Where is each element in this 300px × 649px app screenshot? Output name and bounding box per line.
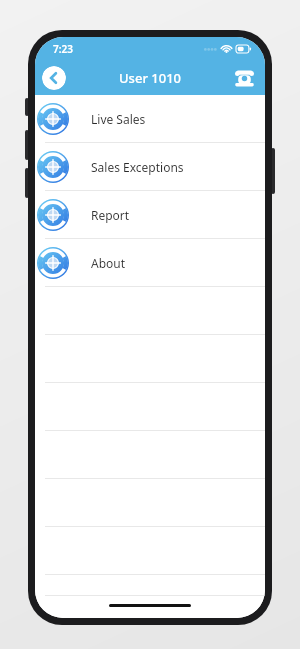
- button[interactable]: Live Sales: [35, 95, 265, 143]
- staticText: Sales Exceptions: [91, 159, 184, 175]
- staticText: Report: [91, 207, 130, 223]
- button[interactable]: [35, 479, 265, 527]
- button[interactable]: [35, 287, 265, 335]
- button[interactable]: Back: [42, 66, 66, 90]
- staticText: Live Sales: [91, 111, 146, 127]
- staticText: User 1010: [119, 69, 181, 87]
- button[interactable]: About: [35, 239, 265, 287]
- button[interactable]: Sales Exceptions: [35, 143, 265, 191]
- button[interactable]: [35, 431, 265, 479]
- staticText: 7:23: [53, 42, 73, 56]
- button[interactable]: [35, 335, 265, 383]
- button[interactable]: [35, 527, 265, 575]
- staticText: About: [91, 255, 126, 271]
- button[interactable]: [35, 383, 265, 431]
- button[interactable]: Report: [35, 191, 265, 239]
- button[interactable]: [35, 575, 265, 596]
- button[interactable]: Call: [231, 65, 257, 91]
